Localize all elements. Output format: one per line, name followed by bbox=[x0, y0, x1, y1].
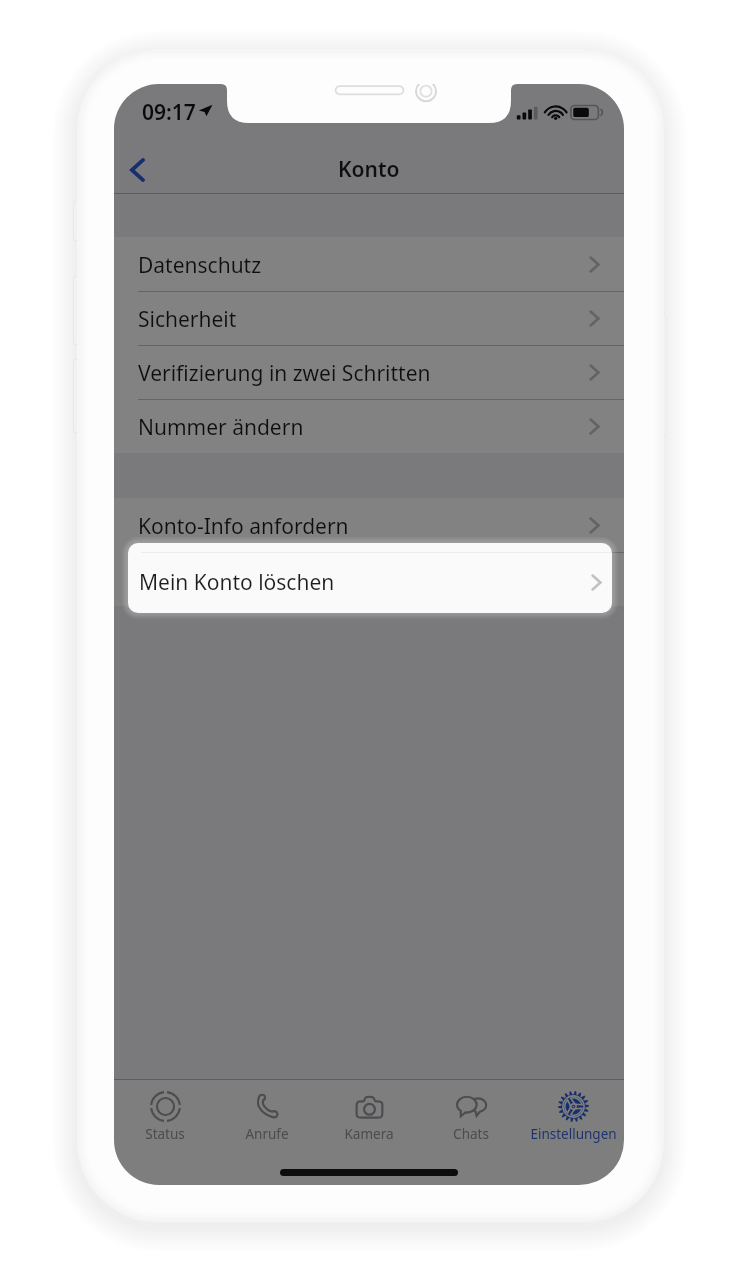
button[interactable]: Verifizierung in zwei Schritten bbox=[114, 345, 624, 399]
staticText: 09:17 bbox=[142, 98, 196, 127]
button[interactable]: Sicherheit bbox=[114, 291, 624, 345]
button[interactable]: Anrufe bbox=[216, 1080, 318, 1150]
staticText: Nummer ändern bbox=[138, 413, 304, 442]
staticText: Konto-Info anfordern bbox=[138, 512, 349, 541]
button[interactable]: Nummer ändern bbox=[114, 399, 624, 453]
button[interactable]: Mein Konto löschen bbox=[114, 552, 624, 606]
staticText: Verifizierung in zwei Schritten bbox=[138, 359, 431, 388]
button[interactable]: Einstellungen bbox=[522, 1080, 624, 1150]
staticText: Mein Konto löschen bbox=[138, 566, 334, 595]
staticText: Chats bbox=[453, 1125, 489, 1143]
button[interactable]: Chats bbox=[420, 1080, 522, 1150]
staticText: Konto bbox=[338, 155, 400, 184]
staticText: Status bbox=[145, 1125, 185, 1143]
staticText: Sicherheit bbox=[138, 305, 237, 334]
button[interactable]: Back bbox=[114, 141, 168, 199]
button[interactable]: Status bbox=[114, 1080, 216, 1150]
button[interactable]: Kamera bbox=[318, 1080, 420, 1150]
staticText: Mein Konto löschen bbox=[139, 568, 335, 597]
staticText: Einstellungen bbox=[530, 1125, 617, 1143]
staticText: Datenschutz bbox=[138, 251, 262, 280]
staticText: Anrufe bbox=[245, 1125, 289, 1143]
button[interactable]: Mein Konto löschen bbox=[128, 543, 612, 613]
staticText: Kamera bbox=[344, 1125, 394, 1143]
button[interactable]: Datenschutz bbox=[114, 237, 624, 291]
button[interactable]: Konto-Info anfordern bbox=[114, 498, 624, 552]
